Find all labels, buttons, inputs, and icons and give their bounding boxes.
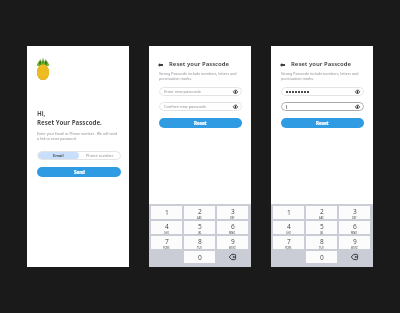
staticText: 6 — [231, 222, 235, 231]
button[interactable]: 4 — [273, 221, 304, 234]
staticText: Strong Passcode include numbers, letters… — [159, 71, 237, 81]
staticText: Hi, — [37, 109, 46, 117]
staticText: 8 — [198, 237, 202, 246]
button[interactable]: 4 — [151, 221, 182, 234]
button[interactable]: 8 — [184, 236, 215, 249]
staticText: TUV — [319, 246, 324, 249]
button[interactable]: 5 — [306, 221, 337, 234]
staticText: Email — [53, 153, 64, 158]
staticText: JKL — [198, 231, 202, 234]
staticText: 4 — [287, 222, 291, 231]
button[interactable]: Show passcode — [281, 87, 364, 96]
staticText: JKL — [320, 231, 324, 234]
button[interactable]: Delete — [217, 251, 248, 263]
button[interactable]: 8 — [306, 236, 337, 249]
staticText: DEF — [230, 216, 235, 219]
button[interactable]: 6 — [339, 221, 370, 234]
button[interactable]: Reset — [159, 118, 242, 128]
staticText: Confirm new passcode — [164, 104, 207, 109]
staticText: 2 — [320, 207, 324, 216]
staticText: 2 — [198, 207, 202, 216]
other: Show passcode — [233, 104, 238, 109]
staticText: MNO — [351, 231, 358, 234]
button[interactable]: Reset — [281, 118, 364, 128]
staticText: PQRS — [163, 246, 170, 249]
staticText: 9 — [231, 237, 235, 246]
staticText: 1 — [165, 208, 169, 217]
button[interactable]: Show passcode — [281, 102, 364, 111]
staticText: WXYZ — [351, 246, 358, 249]
staticText: Enter new passcode — [164, 89, 201, 94]
staticText: 5 — [198, 222, 202, 231]
button[interactable]: 6 — [217, 221, 248, 234]
staticText: 6 — [353, 222, 357, 231]
staticText: Phone number — [86, 153, 114, 158]
button[interactable]: 9 — [217, 236, 248, 249]
button[interactable]: Send — [37, 167, 121, 177]
staticText: 9 — [353, 237, 357, 246]
button[interactable]: 5 — [184, 221, 215, 234]
button[interactable]: 1 — [151, 206, 182, 219]
staticText: 0 — [198, 253, 202, 262]
staticText: 7 — [165, 237, 169, 246]
button[interactable]: 7 — [151, 236, 182, 249]
staticText: 3 — [231, 207, 235, 216]
button[interactable]: Back — [277, 60, 288, 69]
button[interactable]: Enter new passcode — [159, 87, 242, 96]
staticText: PQRS — [285, 246, 292, 249]
staticText: Reset your Passcode — [291, 60, 352, 68]
button[interactable]: 0 — [184, 251, 215, 263]
staticText: 0 — [320, 253, 324, 262]
button[interactable]: 3 — [217, 206, 248, 219]
other: Show passcode — [355, 104, 360, 109]
button[interactable]: 2 — [306, 206, 337, 219]
staticText: 7 — [287, 237, 291, 246]
other: Show passcode — [355, 89, 360, 94]
button[interactable]: Back — [155, 60, 166, 69]
button[interactable]: Confirm new passcode — [159, 102, 242, 111]
button[interactable]: 7 — [273, 236, 304, 249]
button[interactable]: Delete — [339, 251, 370, 263]
button[interactable]: 2 — [184, 206, 215, 219]
button[interactable]: 0 — [306, 251, 337, 263]
button[interactable]: Email — [38, 152, 79, 159]
staticText: DEF — [352, 216, 357, 219]
staticText: Reset Your Passcode. — [37, 118, 102, 126]
other: Show passcode — [233, 89, 238, 94]
staticText: 5 — [320, 222, 324, 231]
staticText: MNO — [229, 231, 236, 234]
staticText: ABC — [197, 216, 202, 219]
staticText: Strong Passcode include numbers, letters… — [281, 71, 359, 81]
staticText: GHI — [286, 231, 291, 234]
staticText: ABC — [319, 216, 324, 219]
button[interactable]: Phone number — [79, 152, 120, 159]
button[interactable]: 9 — [339, 236, 370, 249]
staticText: Enter your Email or Phone number . We wi… — [37, 131, 118, 141]
staticText: 4 — [165, 222, 169, 231]
staticText: TUV — [197, 246, 202, 249]
staticText: WXYZ — [229, 246, 236, 249]
staticText: Reset — [194, 120, 207, 126]
staticText: 3 — [353, 207, 357, 216]
staticText: Send — [74, 169, 85, 175]
staticText: Reset your Passcode — [169, 60, 230, 68]
staticText: 1 — [287, 208, 291, 217]
staticText: 8 — [320, 237, 324, 246]
button[interactable]: 1 — [273, 206, 304, 219]
button[interactable]: 3 — [339, 206, 370, 219]
staticText: GHI — [164, 231, 169, 234]
staticText: Reset — [316, 120, 329, 126]
